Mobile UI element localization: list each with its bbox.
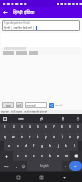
button[interactable]: s (13, 141, 22, 151)
button[interactable]: Type Anywhere Hindi (4, 21, 78, 30)
button[interactable]: 3 (18, 131, 26, 141)
staticText: e (21, 135, 23, 139)
button[interactable]: 0 (74, 131, 82, 141)
staticText: हो (40, 116, 43, 121)
button[interactable]: c (30, 151, 38, 161)
staticText: f (33, 144, 35, 148)
button[interactable]: Emoji (20, 161, 27, 171)
button[interactable]: कॉपी (16, 102, 23, 108)
staticText: साझा (6, 104, 11, 107)
button[interactable]: j (54, 141, 62, 151)
button[interactable]: b (46, 151, 54, 161)
staticText: ?१२३ (4, 165, 9, 168)
button[interactable]: 7 (50, 123, 58, 131)
staticText: 4 (29, 133, 31, 135)
staticText: हैं (62, 116, 64, 121)
staticText: g (41, 144, 43, 148)
button[interactable]: Keyboard settings (0, 114, 10, 123)
staticText: गूगल हिन्दी (25, 104, 36, 107)
button[interactable]: 9 (66, 123, 74, 131)
staticText: शेयर करें (55, 104, 62, 107)
button[interactable]: Back (59, 172, 69, 182)
staticText: z (17, 154, 19, 158)
staticText: 0 (77, 125, 79, 129)
button[interactable]: हैं (52, 114, 73, 123)
button[interactable]: 8 (58, 131, 66, 141)
staticText: x (25, 154, 27, 158)
staticText: 1 (4, 125, 6, 129)
button[interactable]: v (38, 151, 46, 161)
staticText: y (45, 135, 47, 139)
button[interactable]: 0 (74, 123, 82, 131)
staticText: w (12, 135, 15, 139)
staticText: 2 (13, 125, 15, 129)
staticText: o (69, 135, 71, 139)
staticText: 5 (37, 125, 39, 129)
button[interactable]: Enter (69, 161, 82, 171)
button[interactable]: 4 (26, 123, 34, 131)
button[interactable]: English (27, 161, 62, 171)
button[interactable]: Share (49, 103, 54, 108)
staticText: i (62, 135, 63, 139)
staticText: टाइप करें | हिन्दी टाइपिंग | हिन्दी में … (1, 111, 47, 114)
button[interactable]: g (38, 141, 46, 151)
button[interactable]: , (13, 161, 20, 171)
button[interactable]: 8 (58, 123, 66, 131)
button[interactable]: 2 (9, 123, 18, 131)
staticText: d (25, 144, 27, 148)
button[interactable]: साझा (2, 102, 14, 108)
button[interactable]: 6 (42, 123, 50, 131)
button[interactable]: 6 (42, 131, 50, 141)
button[interactable]: a (4, 141, 13, 151)
button[interactable]: 9 (66, 131, 74, 141)
staticText: 7 (53, 133, 55, 135)
staticText: Type Anywhere Hindi (4, 21, 30, 25)
staticText: 2 (13, 133, 15, 135)
staticText: t (37, 135, 39, 139)
staticText: p (77, 135, 79, 139)
button[interactable]: f (30, 141, 38, 151)
button[interactable]: Shift (0, 151, 13, 161)
button[interactable]: . (62, 161, 69, 171)
staticText: k (65, 144, 67, 148)
button[interactable]: 1 (0, 131, 9, 141)
button[interactable]: Backspace (70, 151, 82, 161)
button[interactable]: k (62, 141, 70, 151)
staticText: 6 (45, 133, 47, 135)
button[interactable]: Back (0, 7, 11, 18)
button[interactable]: m (62, 151, 70, 161)
staticText: m (65, 154, 68, 158)
staticText: r (29, 135, 31, 139)
button[interactable]: l (70, 141, 78, 151)
button[interactable]: 1 (0, 123, 9, 131)
button[interactable]: ?१२३ (0, 161, 13, 171)
button[interactable]: गूगल हिन्दी (25, 102, 47, 108)
staticText: 1 (4, 133, 6, 135)
button[interactable]: z (13, 151, 22, 161)
staticText: q (4, 135, 6, 139)
staticText: 4 (29, 125, 31, 129)
staticText: 8 (61, 125, 63, 129)
button[interactable]: 4 (26, 131, 34, 141)
staticText: n (57, 154, 59, 158)
button[interactable]: 5 (34, 123, 42, 131)
button[interactable]: हो (31, 114, 52, 123)
staticText: हिन्दी इंडिक (13, 9, 35, 16)
button[interactable]: Recents (13, 172, 23, 182)
staticText: v (41, 154, 43, 158)
button[interactable]: आप (10, 114, 31, 123)
staticText: 5 (37, 133, 39, 135)
button[interactable]: Home (36, 172, 46, 182)
button[interactable]: h (46, 141, 54, 151)
button[interactable]: 5 (34, 131, 42, 141)
button[interactable]: 7 (50, 131, 58, 141)
button[interactable]: n (54, 151, 62, 161)
button[interactable]: 3 (18, 123, 26, 131)
button[interactable]: 2 (9, 131, 18, 141)
button[interactable]: d (22, 141, 30, 151)
button[interactable]: Voice input (73, 114, 82, 123)
button[interactable]: x (22, 151, 30, 161)
